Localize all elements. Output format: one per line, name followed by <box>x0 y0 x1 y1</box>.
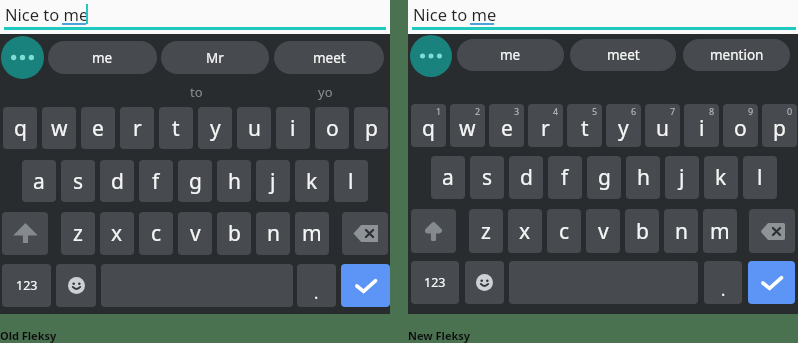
button[interactable]: o <box>315 107 349 149</box>
staticText: . <box>314 282 319 304</box>
button[interactable]: mention <box>683 39 790 71</box>
button[interactable]: f <box>548 156 582 199</box>
button[interactable]: l <box>334 160 368 202</box>
staticText: to <box>190 83 203 101</box>
staticText: f <box>152 167 160 196</box>
button[interactable]: l <box>743 156 777 199</box>
staticText: v <box>598 217 609 246</box>
button[interactable] <box>748 261 795 304</box>
button[interactable]: u <box>645 104 680 147</box>
button[interactable] <box>749 209 795 253</box>
staticText: p <box>773 114 786 143</box>
button[interactable]: meet <box>274 41 384 74</box>
button[interactable]: d <box>100 160 134 202</box>
button[interactable]: k <box>704 156 738 199</box>
staticText: s <box>73 167 84 196</box>
button[interactable] <box>2 212 48 255</box>
button[interactable]: k <box>295 160 329 202</box>
button[interactable] <box>411 209 456 253</box>
button[interactable]: c <box>139 212 173 255</box>
button[interactable]: s <box>61 160 95 202</box>
button[interactable]: b <box>625 209 659 253</box>
button[interactable]: z <box>61 212 95 255</box>
button[interactable]: More suggestions <box>1 36 44 79</box>
button[interactable]: n <box>256 212 290 255</box>
button[interactable] <box>342 212 388 255</box>
button[interactable]: e <box>489 104 524 147</box>
staticText: d <box>111 167 124 196</box>
staticText: a <box>33 167 45 196</box>
staticText: s <box>482 163 493 192</box>
button[interactable]: x <box>100 212 134 255</box>
staticText: n <box>675 217 688 246</box>
button[interactable]: x <box>508 209 542 253</box>
staticText: 8 <box>709 105 715 117</box>
button[interactable]: q <box>411 104 446 147</box>
staticText: . <box>721 279 726 301</box>
button[interactable]: Mr <box>161 41 269 74</box>
button[interactable]: w <box>42 107 76 149</box>
button[interactable]: s <box>470 156 504 199</box>
button[interactable]: r <box>528 104 563 147</box>
staticText: me <box>92 49 113 67</box>
button[interactable]: i <box>684 104 719 147</box>
button[interactable]: me <box>48 41 157 74</box>
button[interactable]: c <box>547 209 581 253</box>
button[interactable]: i <box>276 107 310 149</box>
button[interactable]: b <box>217 212 251 255</box>
staticText: u <box>656 114 669 143</box>
button[interactable]: me <box>457 39 564 71</box>
staticText: o <box>734 114 747 143</box>
staticText: i <box>699 114 705 143</box>
button[interactable]: m <box>703 209 737 253</box>
staticText: 123 <box>424 274 446 291</box>
button[interactable]: m <box>295 212 329 255</box>
button[interactable]: z <box>469 209 503 253</box>
button[interactable]: meet <box>570 39 676 71</box>
button[interactable]: w <box>450 104 485 147</box>
button[interactable]: a <box>431 156 465 199</box>
button[interactable]: f <box>139 160 173 202</box>
staticText: New Fleksy <box>408 328 471 343</box>
button[interactable]: u <box>237 107 271 149</box>
button[interactable]: t <box>567 104 602 147</box>
button[interactable]: y <box>606 104 641 147</box>
button[interactable]: 123 <box>411 261 459 304</box>
button[interactable]: o <box>723 104 758 147</box>
staticText: x <box>111 219 123 248</box>
button[interactable] <box>56 264 96 307</box>
button[interactable]: p <box>354 107 388 149</box>
staticText: d <box>520 163 533 192</box>
staticText: y <box>210 114 221 143</box>
button[interactable]: g <box>587 156 621 199</box>
button[interactable]: r <box>120 107 154 149</box>
button[interactable]: h <box>217 160 251 202</box>
button[interactable]: a <box>22 160 56 202</box>
staticText: h <box>637 163 650 192</box>
button[interactable]: v <box>178 212 212 255</box>
button[interactable]: y <box>198 107 232 149</box>
button[interactable]: 123 <box>2 264 51 307</box>
button[interactable]: More suggestions <box>410 35 452 77</box>
button[interactable]: . <box>297 264 336 307</box>
button[interactable]: q <box>3 107 37 149</box>
button[interactable] <box>341 264 390 307</box>
button[interactable]: n <box>664 209 698 253</box>
button[interactable]: e <box>81 107 115 149</box>
button[interactable]: d <box>509 156 543 199</box>
button[interactable] <box>465 261 504 304</box>
button[interactable]: v <box>586 209 620 253</box>
button[interactable]: j <box>665 156 699 199</box>
staticText: q <box>422 114 435 143</box>
button[interactable]: g <box>178 160 212 202</box>
staticText: l <box>348 167 354 196</box>
button[interactable]: j <box>256 160 290 202</box>
button[interactable]: . <box>704 261 742 304</box>
staticText: 123 <box>16 277 38 294</box>
button[interactable]: t <box>159 107 193 149</box>
button[interactable]: p <box>762 104 797 147</box>
button[interactable]: h <box>626 156 660 199</box>
staticText: j <box>679 163 685 192</box>
